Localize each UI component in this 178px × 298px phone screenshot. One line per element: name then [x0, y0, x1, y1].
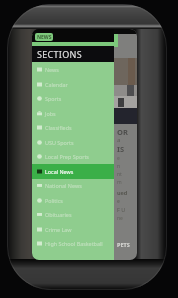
staticText: High School Basketball: [45, 240, 103, 247]
staticText: Local Prep Sports: [45, 153, 89, 160]
staticText: Obituaries: [45, 211, 72, 218]
staticText: ued: [117, 189, 128, 196]
staticText: ne: [117, 215, 123, 222]
staticText: PETS: [117, 241, 130, 248]
staticText: News: [45, 66, 59, 73]
staticText: Calendar: [45, 81, 68, 88]
button[interactable]: National News: [32, 178, 114, 193]
button[interactable]: Sports: [32, 91, 114, 106]
button[interactable]: Obituaries: [32, 207, 114, 222]
button[interactable]: Local News: [32, 164, 114, 179]
button[interactable]: USU Sports: [32, 135, 114, 150]
button[interactable]: Crime Law: [32, 222, 114, 237]
staticText: m: [117, 179, 122, 186]
staticText: e: [117, 155, 120, 162]
button[interactable]: Politics: [32, 193, 114, 208]
staticText: Politics: [45, 197, 63, 204]
staticText: SECTIONS: [37, 48, 82, 60]
button[interactable]: News: [32, 62, 114, 77]
staticText: Crime Law: [45, 226, 72, 233]
staticText: e: [117, 198, 120, 205]
button[interactable]: Classifieds: [32, 120, 114, 135]
staticText: Sports: [45, 95, 62, 102]
staticText: a: [117, 136, 121, 144]
staticText: OR: [117, 127, 128, 137]
button[interactable]: Jobs: [32, 106, 114, 121]
button[interactable]: Local Prep Sports: [32, 149, 114, 164]
staticText: nt: [117, 171, 122, 178]
staticText: USU Sports: [45, 139, 74, 146]
button[interactable]: Calendar: [32, 77, 114, 92]
staticText: IS: [117, 144, 125, 154]
button[interactable]: KSL News logo: [35, 33, 53, 41]
staticText: n: [117, 163, 121, 170]
staticText: Jobs: [45, 110, 56, 117]
staticText: National News: [45, 182, 82, 189]
staticText: Local News: [45, 168, 74, 175]
staticText: Classifieds: [45, 124, 72, 131]
button[interactable]: High School Basketball: [32, 236, 114, 251]
staticText: F U: [117, 206, 126, 213]
staticText: NEWS: [37, 34, 52, 41]
